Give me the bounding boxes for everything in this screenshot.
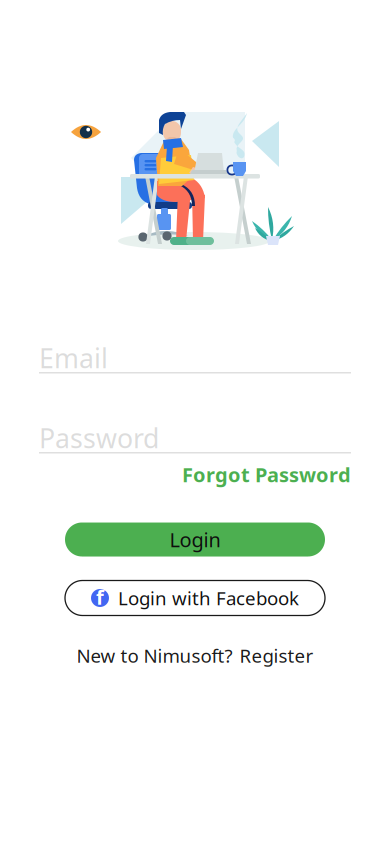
staticText: f: [96, 584, 104, 610]
button[interactable]: f: [65, 580, 325, 615]
staticText: Login: [169, 526, 220, 553]
button[interactable]: Register: [239, 643, 313, 668]
button[interactable]: Login: [65, 522, 325, 556]
staticText: Login with Facebook: [118, 586, 299, 610]
staticText: Password: [39, 420, 159, 456]
staticText: Email: [39, 340, 108, 376]
staticText: Register: [239, 643, 313, 668]
staticText: Forgot Password: [182, 461, 351, 488]
button[interactable]: Forgot Password: [182, 461, 351, 488]
staticText: New to Nimusoft?: [76, 643, 232, 668]
